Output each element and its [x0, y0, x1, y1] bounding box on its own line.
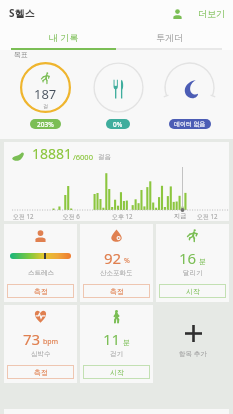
staticText: 203%	[37, 120, 54, 129]
button[interactable]: 스트레스	[4, 224, 77, 302]
button[interactable]: 18881	[4, 142, 229, 221]
button[interactable]: 항목 추가	[156, 305, 229, 383]
staticText: 분	[123, 338, 130, 347]
staticText: 시작	[110, 368, 124, 377]
button[interactable]: 203%	[30, 119, 61, 129]
button[interactable]: 73	[4, 305, 77, 383]
button[interactable]: 데이터 없음	[169, 119, 211, 129]
staticText: 목표	[14, 50, 28, 59]
staticText: 달리기	[183, 269, 203, 277]
button[interactable]: 16	[156, 224, 229, 302]
staticText: S헬스	[9, 6, 35, 20]
button[interactable]: 내 기록	[11, 26, 116, 48]
button[interactable]: 92	[80, 224, 153, 302]
staticText: 11	[103, 329, 121, 349]
staticText: 더보기	[198, 8, 225, 19]
staticText: 187	[34, 85, 57, 103]
staticText: %	[124, 256, 130, 266]
button[interactable]: 측정	[7, 365, 74, 379]
staticText: 측정	[34, 287, 48, 296]
staticText: 측정	[34, 368, 48, 377]
staticText: 시작	[186, 287, 200, 296]
staticText: 오전 12	[9, 212, 37, 220]
other: Profile	[173, 9, 182, 19]
button[interactable]: 0%	[106, 119, 130, 129]
staticText: 스트레스	[28, 269, 54, 277]
staticText: 오전 6	[57, 212, 85, 220]
staticText: 오후 12	[108, 212, 136, 220]
button[interactable]: 시작	[83, 365, 150, 379]
staticText: 지금	[166, 212, 194, 220]
staticText: 0%	[113, 120, 123, 129]
staticText: 18881	[32, 144, 73, 163]
staticText: 걷기	[110, 350, 123, 358]
staticText: 산소포화도	[100, 269, 133, 277]
staticText: 73	[23, 329, 41, 349]
button[interactable]: 187	[0, 62, 90, 129]
staticText: 분	[199, 257, 206, 266]
staticText: 오전 12	[193, 212, 221, 220]
staticText: 심박수	[31, 350, 51, 358]
staticText: 데이터 없음	[174, 120, 206, 128]
button[interactable]: Profile	[171, 6, 227, 21]
staticText: 92	[104, 248, 122, 268]
staticText: 투게더	[156, 32, 183, 43]
button[interactable]: 측정	[7, 284, 74, 298]
staticText: 걸	[43, 103, 48, 109]
button[interactable]: 투게더	[116, 26, 222, 48]
button[interactable]: 0%	[90, 62, 146, 129]
button[interactable]: 11	[80, 305, 153, 383]
staticText: 내 기록	[49, 31, 79, 43]
other: 항목 추가	[185, 325, 202, 342]
staticText: 16	[179, 248, 197, 268]
staticText: bpm	[43, 337, 59, 347]
staticText: 측정	[110, 287, 124, 296]
button[interactable]: 시작	[159, 284, 226, 298]
button[interactable]: 데이터 없음	[146, 62, 233, 129]
button[interactable]: 측정	[83, 284, 150, 298]
staticText: 걸음	[98, 153, 111, 161]
staticText: /6000	[73, 152, 93, 162]
staticText: 항목 추가	[179, 349, 207, 358]
